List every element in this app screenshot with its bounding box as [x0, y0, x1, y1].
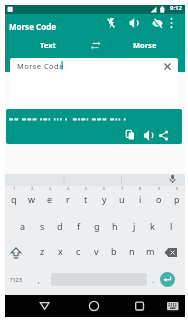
staticText: u — [119, 193, 125, 205]
staticText: Morse Code — [17, 61, 64, 71]
button[interactable]: z — [33, 240, 51, 262]
staticText: g — [94, 220, 100, 232]
staticText: l — [170, 220, 173, 232]
staticText: j — [133, 220, 136, 232]
staticText: w — [28, 193, 36, 205]
button[interactable]: n — [123, 240, 141, 262]
button[interactable]: a — [14, 215, 32, 237]
button[interactable]: y — [95, 188, 113, 210]
button[interactable] — [6, 109, 182, 144]
staticText: 1 — [13, 186, 16, 191]
button[interactable]: m — [141, 240, 159, 262]
staticText: Morse Code — [9, 21, 56, 32]
staticText: 3 — [49, 186, 52, 191]
staticText: y — [102, 193, 107, 205]
staticText: c — [76, 245, 81, 257]
staticText: 2 — [31, 186, 34, 191]
staticText: 9:12 — [170, 4, 182, 12]
staticText: 6 — [103, 186, 106, 191]
button[interactable] — [9, 246, 23, 259]
staticText: p — [174, 193, 180, 205]
staticText: s — [40, 220, 45, 232]
button[interactable] — [5, 34, 95, 57]
button[interactable]: Morse Code — [10, 58, 178, 108]
staticText: 4 — [67, 186, 70, 191]
staticText: 5 — [85, 186, 88, 191]
staticText: 9 — [158, 186, 161, 191]
staticText: h — [112, 220, 118, 232]
button[interactable]: e — [41, 188, 59, 210]
staticText: x — [58, 245, 63, 257]
staticText: Text — [40, 40, 56, 50]
staticText: ?123 — [10, 276, 22, 283]
staticText: d — [57, 220, 63, 232]
staticText: e — [47, 193, 53, 205]
staticText: o — [156, 193, 162, 205]
staticText: z — [40, 245, 45, 257]
button[interactable] — [95, 34, 185, 57]
button[interactable]: j — [125, 215, 143, 237]
button[interactable]: t — [77, 188, 95, 210]
staticText: q — [11, 193, 17, 205]
button[interactable] — [163, 295, 183, 317]
staticText: 0 — [176, 186, 179, 191]
staticText: n — [129, 245, 135, 257]
button[interactable]: f — [70, 215, 88, 237]
button[interactable]: w — [23, 188, 41, 210]
button[interactable]: p — [168, 188, 186, 210]
button[interactable]: o — [150, 188, 168, 210]
button[interactable] — [30, 295, 60, 317]
button[interactable] — [79, 295, 109, 317]
button[interactable]: l — [162, 215, 180, 237]
staticText: i — [139, 193, 142, 205]
button[interactable] — [89, 39, 102, 52]
staticText: t — [84, 193, 88, 205]
staticText: Morse — [133, 40, 157, 50]
button[interactable]: v — [87, 240, 105, 262]
button[interactable] — [160, 272, 175, 287]
button[interactable]: s — [33, 215, 51, 237]
staticText: . — [152, 276, 154, 286]
staticText: a — [20, 220, 26, 232]
button[interactable]: c — [69, 240, 87, 262]
button[interactable]: r — [59, 188, 77, 210]
button[interactable]: i — [131, 188, 149, 210]
button[interactable]: k — [143, 215, 161, 237]
button[interactable]: g — [88, 215, 106, 237]
staticText: m — [146, 245, 155, 257]
button[interactable]: d — [51, 215, 69, 237]
button[interactable]: x — [51, 240, 69, 262]
button[interactable] — [161, 60, 174, 73]
button[interactable]: b — [105, 240, 123, 262]
staticText: f — [77, 220, 81, 232]
button[interactable]: u — [113, 188, 131, 210]
button[interactable]: q — [5, 188, 23, 210]
staticText: v — [94, 245, 99, 257]
staticText: k — [150, 220, 155, 232]
staticText: 7 — [121, 186, 124, 191]
staticText: 8 — [139, 186, 142, 191]
button[interactable] — [125, 295, 155, 317]
staticText: , — [38, 276, 40, 286]
button[interactable]: h — [106, 215, 124, 237]
staticText: r — [66, 193, 70, 205]
button[interactable] — [164, 247, 179, 259]
staticText: b — [111, 245, 117, 257]
